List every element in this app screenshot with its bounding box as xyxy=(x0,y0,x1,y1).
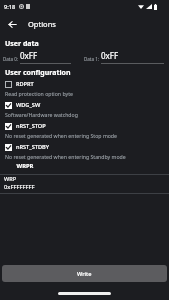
staticText: RDPRT xyxy=(16,80,34,88)
button[interactable]: Write xyxy=(2,265,167,282)
staticText: WRP xyxy=(4,175,17,183)
staticText: 0xFF xyxy=(101,50,119,61)
staticText: User data xyxy=(5,39,39,49)
button[interactable]: nRST_STDBY xyxy=(0,143,169,160)
staticText: Software/Hardware watchdog xyxy=(5,111,78,118)
staticText: Write xyxy=(77,270,92,278)
staticText: Data 0: xyxy=(3,56,18,62)
staticText: nRST_STOP xyxy=(16,122,46,130)
button[interactable]: WDG_SW xyxy=(0,101,169,118)
staticText: 0xFF xyxy=(20,50,38,61)
staticText: 9:18 xyxy=(4,3,16,11)
staticText: Read protection option byte xyxy=(5,90,73,97)
staticText: 0xFFFFFFFF xyxy=(4,183,35,191)
staticText: nRST_STDBY xyxy=(16,143,49,151)
staticText: User configuration xyxy=(5,68,71,78)
button[interactable]: RDPRT xyxy=(0,80,169,97)
staticText: Data 1: xyxy=(84,56,99,62)
staticText: Options xyxy=(28,19,56,29)
staticText: WRPR xyxy=(0,162,50,170)
button[interactable]: nRST_STOP xyxy=(0,122,169,139)
staticText: WDG_SW xyxy=(16,101,41,109)
staticText: No reset generated when entering Stop mo… xyxy=(5,132,117,139)
button[interactable]: Back xyxy=(0,13,24,35)
staticText: No reset generated when entering Standby… xyxy=(5,153,126,160)
